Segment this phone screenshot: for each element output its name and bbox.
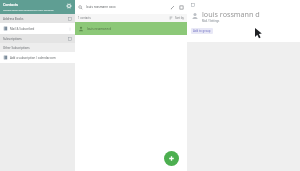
button[interactable]: Print — [179, 5, 184, 10]
staticText: louis rossmann xxxx — [86, 5, 170, 9]
button[interactable]: Add contact — [164, 151, 179, 166]
button[interactable]: louis rossmann d — [75, 22, 187, 35]
staticText: Add a subscription / calendar.com — [10, 56, 72, 60]
button[interactable]: Add a subscription / calendar.com — [0, 52, 75, 63]
staticText: Other Subscriptions — [3, 46, 30, 50]
staticText: Add to group — [193, 29, 211, 33]
other: Search — [78, 5, 83, 10]
other: Expand — [68, 17, 72, 21]
button[interactable]: Sort by — [175, 16, 184, 20]
other: Expand — [68, 37, 72, 41]
button[interactable]: Back — [191, 3, 195, 7]
staticText: Mail & Subscribed — [10, 27, 68, 31]
staticText: louis rossmann d — [87, 27, 112, 31]
staticText: Address Books — [3, 17, 24, 21]
staticText: louis rossmann d — [202, 9, 260, 19]
button[interactable]: Add to group — [191, 28, 213, 34]
button[interactable]: Search — [75, 0, 187, 14]
button[interactable]: Mail & Subscribed — [0, 23, 75, 34]
button[interactable]: Contacts — [0, 0, 75, 14]
staticText: Mail / Settings — [202, 19, 220, 23]
button[interactable]: More options — [68, 27, 72, 31]
staticText: 1 contacts — [78, 16, 169, 20]
button[interactable]: Subscriptions — [0, 34, 75, 43]
staticText: Subscriptions — [3, 37, 22, 41]
button[interactable]: Edit — [170, 5, 175, 10]
button[interactable]: Settings — [66, 3, 72, 9]
staticText: Google apps and services for your contac… — [3, 8, 54, 11]
staticText: Contacts — [3, 2, 19, 7]
button[interactable]: Address Books — [0, 14, 75, 23]
